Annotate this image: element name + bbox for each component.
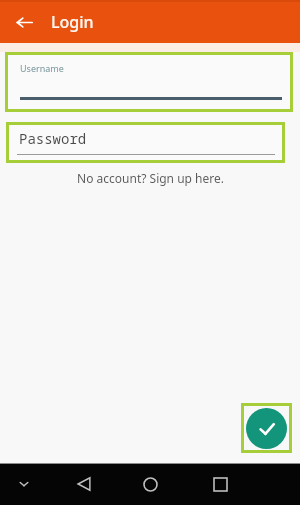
button[interactable]: No account? Sign up here. <box>0 170 300 186</box>
button[interactable]: Confirm <box>246 408 287 449</box>
button[interactable]: Recent apps <box>205 469 235 499</box>
button[interactable]: Back <box>70 470 98 498</box>
button[interactable]: Home <box>135 469 165 499</box>
button[interactable]: Hide keyboard <box>10 470 38 498</box>
staticText: Password <box>19 129 87 148</box>
button[interactable]: Back <box>10 8 38 36</box>
button[interactable]: Password <box>9 125 282 160</box>
button[interactable]: Username <box>8 55 290 109</box>
staticText: No account? Sign up here. <box>77 170 224 186</box>
staticText: Login <box>51 11 94 33</box>
staticText: Username <box>20 62 64 74</box>
